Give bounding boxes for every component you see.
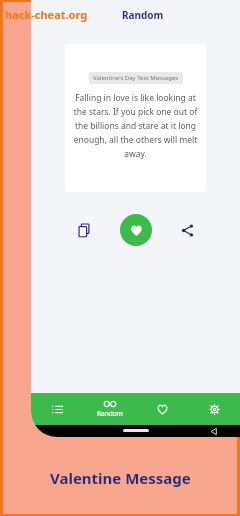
staticText: hack-cheat.org [5,7,88,22]
button[interactable]: Favorite [120,214,152,246]
staticText: Valentine's Day Text Messages [93,74,179,82]
staticText: Random [97,409,123,418]
staticText: Falling in love is like looking at the s… [73,92,198,159]
staticText: Valentine Message [50,468,191,488]
button[interactable]: Valentine's Day Text Messages [65,44,206,192]
button[interactable]: Share [174,217,200,243]
button[interactable]: Random [84,393,136,425]
button[interactable]: Settings [188,393,240,425]
button[interactable]: Favorites [136,393,188,425]
button[interactable]: List [31,393,84,425]
staticText: Random [122,8,164,22]
button[interactable]: Copy [71,217,97,243]
